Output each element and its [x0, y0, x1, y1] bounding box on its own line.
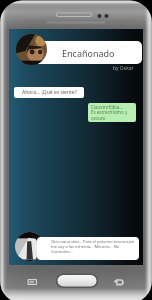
button[interactable]: Avatar [15, 232, 44, 261]
button[interactable]: Ahora... ¡Qué se siente? [14, 87, 84, 98]
staticText: by Oskar [113, 65, 134, 72]
staticText: Ahora... ¡Qué se siente? [22, 89, 77, 96]
button[interactable]: Claustrofóbia... Es estrechísimo y oscur… [88, 103, 136, 122]
staticText: Otro nano diez... Para el próximo micron… [51, 239, 136, 254]
button[interactable]: Avatar [16, 34, 47, 65]
button[interactable]: Otro nano diez... Para el próximo micron… [37, 237, 139, 260]
staticText: Encañonado [62, 47, 115, 59]
button[interactable]: Encañonado [34, 41, 142, 64]
staticText: Claustrofóbia... Es estrechísimo y oscur… [91, 104, 128, 122]
